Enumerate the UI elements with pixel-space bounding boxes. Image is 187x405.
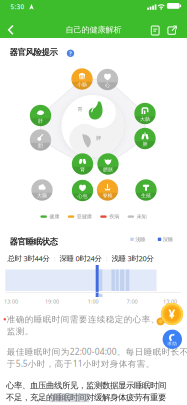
staticText: 大肠 — [140, 116, 150, 122]
staticText: 脾 — [96, 135, 101, 141]
staticText: 自己的健康解析 — [65, 24, 121, 35]
button[interactable]: 健康报告 — [149, 24, 161, 36]
staticText: 浅睡 3时20分 — [111, 253, 153, 263]
staticText: 5:30 — [10, 2, 24, 11]
staticText: 最佳睡眠时间为22:00-04:00。每日睡眠时长不低 — [7, 346, 187, 357]
staticText: 小肠 — [77, 81, 87, 88]
staticText: 膀胱 — [103, 166, 113, 173]
staticText: 监测。 — [7, 326, 34, 337]
staticText: 健康 — [49, 213, 59, 220]
staticText: 13:00 — [4, 297, 18, 305]
staticText: 疾病 — [109, 213, 119, 220]
staticText: 肝 — [38, 118, 43, 124]
staticText: 生殖 — [141, 192, 151, 199]
staticText: 心率、血压曲线所见，监测数据显示睡眠时间 — [6, 380, 166, 391]
staticText: 于5.5小时，高于11小时对身体有害。 — [7, 358, 155, 369]
staticText: 不足，充足的睡眠时间对缓解身体疲劳有重要 — [6, 392, 166, 403]
staticText: 总时 3时44分 — [7, 253, 49, 263]
staticText: 深睡 — [163, 236, 173, 243]
staticText: 器官睡眠状态 — [9, 236, 57, 247]
staticText: 13:00 — [163, 297, 177, 305]
staticText: 19:00 — [45, 297, 59, 305]
staticText: 心 — [105, 82, 110, 88]
button[interactable]: 联系客服 — [163, 330, 182, 349]
button[interactable]: 领取金币 — [161, 303, 183, 325]
staticText: 心包 — [77, 193, 87, 199]
staticText: | — [53, 254, 56, 262]
staticText: 1:00 — [87, 297, 98, 305]
staticText: 未知 — [136, 213, 146, 220]
staticText: ¥ — [169, 306, 176, 322]
staticText: 7:00 — [126, 297, 137, 305]
staticText: 胆 — [38, 142, 43, 149]
staticText: 亚健康 — [77, 213, 92, 220]
staticText: 器官风险提示 — [9, 47, 57, 58]
staticText: | — [105, 254, 108, 262]
button[interactable]: 说明 — [67, 50, 74, 57]
button[interactable]: 分享 — [166, 24, 178, 36]
staticText: 胃 — [77, 106, 82, 112]
staticText: ? — [69, 49, 72, 57]
staticText: 肾 — [80, 166, 85, 173]
staticText: 求助 — [167, 341, 177, 346]
staticText: 脊椎 — [102, 192, 112, 199]
staticText: 浅睡 — [135, 236, 145, 243]
staticText: 大脑 — [37, 192, 47, 199]
staticText: 准确的睡眠时间需要连续稳定的心率、血压 — [7, 314, 178, 325]
button[interactable]: 返回 — [3, 22, 19, 38]
staticText: 深睡 0时24分 — [59, 253, 101, 263]
staticText: 肺 — [142, 141, 147, 147]
